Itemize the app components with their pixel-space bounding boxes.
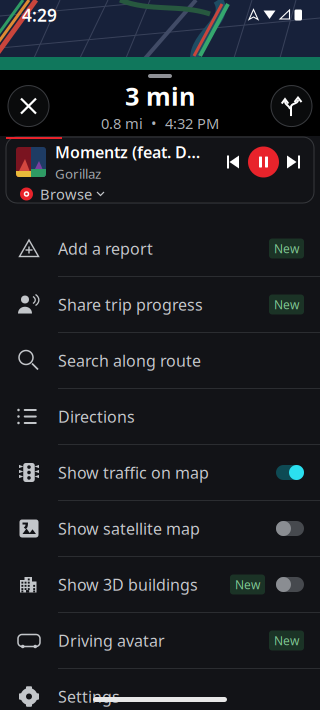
- staticText: Search along route: [58, 350, 201, 371]
- button[interactable]: Show satellite map: [0, 501, 320, 557]
- staticText: Directions: [58, 406, 135, 427]
- button[interactable]: End navigation: [8, 86, 49, 127]
- staticText: Gorillaz: [55, 165, 101, 182]
- button[interactable]: Pause: [248, 146, 279, 177]
- button[interactable]: Directions: [0, 389, 320, 445]
- staticText: Share trip progress: [58, 294, 203, 315]
- staticText: Show traffic on map: [58, 462, 209, 483]
- button[interactable]: Show 3D buildings: [0, 557, 320, 613]
- staticText: New: [274, 296, 299, 312]
- staticText: 3 min: [125, 79, 195, 113]
- button[interactable]: Search along route: [0, 333, 320, 389]
- staticText: Browse: [40, 184, 92, 204]
- button[interactable]: Browse: [6, 184, 104, 204]
- button[interactable]: Share trip progress: [0, 277, 320, 333]
- staticText: New: [235, 576, 260, 592]
- button[interactable]: Driving avatar: [0, 613, 320, 669]
- staticText: New: [274, 240, 299, 256]
- button[interactable]: Previous track: [219, 145, 248, 178]
- staticText: 4:29: [22, 3, 57, 26]
- staticText: Show 3D buildings: [58, 574, 198, 595]
- button[interactable]: Settings: [0, 669, 320, 710]
- staticText: 0.8 mi • 4:32 PM: [101, 114, 219, 133]
- button[interactable]: Next track: [279, 145, 308, 178]
- button[interactable]: Alternate routes: [271, 86, 312, 127]
- staticText: Momentz (feat. De La S...: [55, 141, 203, 163]
- staticText: Show satellite map: [58, 518, 200, 539]
- staticText: Settings: [58, 686, 120, 707]
- staticText: Driving avatar: [58, 630, 165, 651]
- staticText: Add a report: [58, 238, 153, 259]
- staticText: New: [274, 632, 299, 648]
- button[interactable]: Show traffic on map: [0, 445, 320, 501]
- button[interactable]: Add a report: [0, 221, 320, 277]
